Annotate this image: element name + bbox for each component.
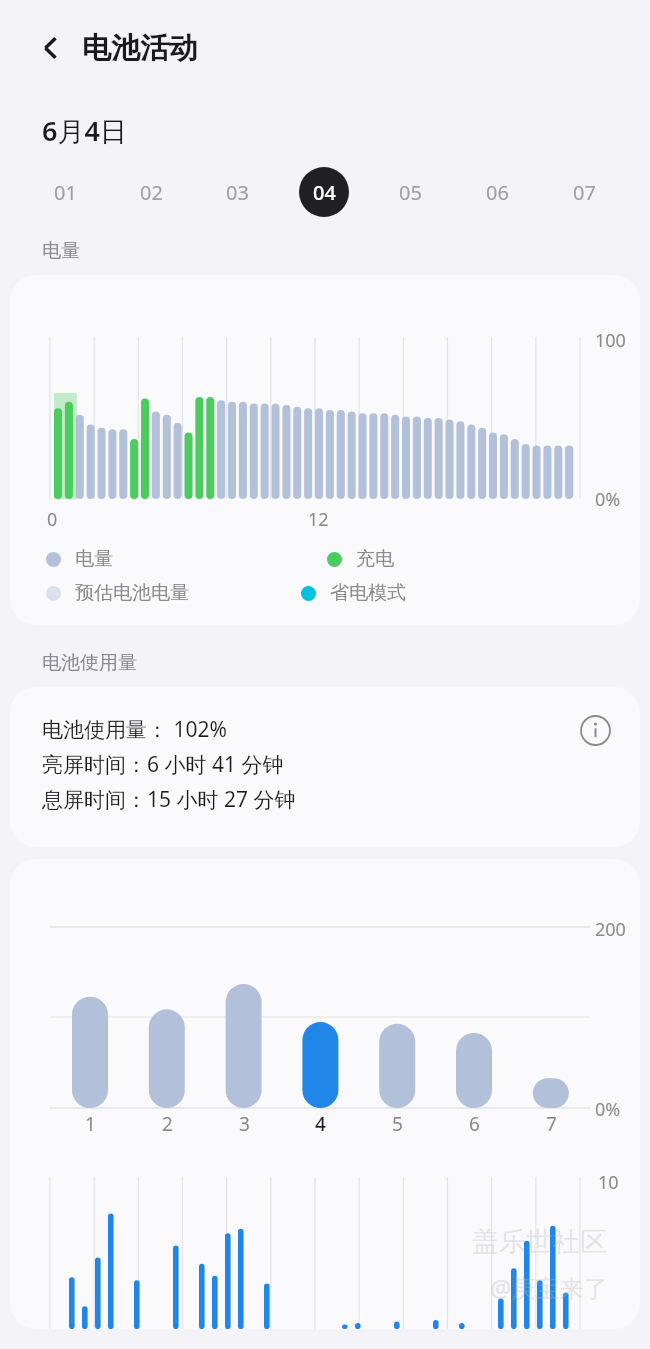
- staticText: 01: [54, 179, 77, 206]
- staticText: 电池使用量: [42, 651, 137, 675]
- staticText: 预估电池电量: [75, 581, 189, 605]
- staticText: 电量: [42, 239, 80, 263]
- staticText: 04: [313, 179, 336, 206]
- staticText: 5: [392, 1111, 403, 1137]
- staticText: 06: [486, 179, 509, 206]
- staticText: 充电: [356, 547, 394, 571]
- staticText: 02: [140, 179, 163, 206]
- staticText: 1: [85, 1111, 96, 1137]
- staticText: 息屏时间：15 小时 27 分钟: [42, 785, 296, 814]
- staticText: 6: [469, 1111, 480, 1137]
- button[interactable]: 05: [367, 163, 454, 221]
- staticText: 0%: [595, 1097, 621, 1122]
- button[interactable]: 02: [108, 163, 194, 221]
- staticText: 10: [598, 1170, 619, 1195]
- staticText: 省电模式: [330, 581, 406, 605]
- staticText: 亮屏时间：6 小时 41 分钟: [42, 750, 284, 779]
- staticText: 6月4日: [42, 112, 127, 149]
- staticText: 盖乐世社区: [472, 1225, 607, 1259]
- staticText: 200: [595, 917, 626, 942]
- staticText: 7: [546, 1111, 557, 1137]
- staticText: 4: [315, 1111, 326, 1137]
- staticText: 100: [595, 328, 626, 353]
- staticText: 12: [308, 507, 329, 532]
- button[interactable]: 07: [541, 163, 628, 221]
- staticText: @庚宝来了: [490, 1271, 608, 1304]
- staticText: 07: [573, 179, 596, 206]
- button[interactable]: 06: [454, 163, 541, 221]
- button[interactable]: 04: [280, 163, 367, 221]
- staticText: 05: [399, 179, 422, 206]
- staticText: 0%: [595, 487, 621, 512]
- staticText: 3: [239, 1111, 250, 1137]
- staticText: 2: [162, 1111, 173, 1137]
- staticText: 03: [226, 179, 249, 206]
- button[interactable]: 电池使用量： 102%: [10, 687, 640, 847]
- button[interactable]: 100: [10, 275, 640, 625]
- staticText: 0: [47, 507, 58, 532]
- staticText: 电量: [75, 547, 113, 571]
- button[interactable]: 01: [22, 163, 108, 221]
- button[interactable]: Info: [572, 707, 618, 753]
- staticText: 电池活动: [82, 30, 198, 67]
- button[interactable]: 03: [194, 163, 280, 221]
- button[interactable]: 200: [10, 859, 640, 1329]
- button[interactable]: Back: [28, 25, 74, 71]
- staticText: 电池使用量： 102%: [42, 715, 227, 744]
